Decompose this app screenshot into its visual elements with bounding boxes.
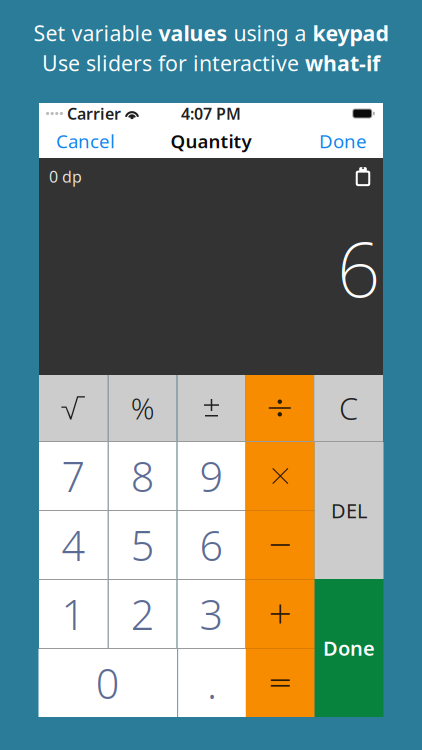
staticText: 6 [337,217,380,318]
staticText: 4 [61,518,85,572]
button[interactable]: Divide [245,375,314,441]
staticText: . [207,656,217,710]
staticText: 0 dp [49,166,82,187]
staticText: 2 [131,587,155,641]
button[interactable] [178,649,246,717]
button[interactable] [178,442,245,510]
staticText: 5 [131,518,155,572]
button[interactable] [178,580,245,648]
button[interactable] [109,442,177,510]
button[interactable] [109,511,177,579]
staticText: Done [319,129,367,153]
button[interactable] [39,580,108,648]
staticText: 9 [199,449,223,503]
button[interactable]: Done [309,124,383,158]
staticText: Quantity [170,129,251,153]
button[interactable]: Subtract [246,511,315,579]
staticText: 4:07 PM [181,103,241,124]
button[interactable]: Cancel [39,124,125,158]
button[interactable]: Copy [355,167,371,186]
button[interactable] [315,442,383,579]
staticText: % [131,388,155,427]
button[interactable] [109,580,177,648]
button[interactable]: Plus or minus [178,375,245,441]
button[interactable]: Multiply [246,442,315,510]
staticText: 0 [96,656,120,710]
staticText: Carrier [67,103,121,124]
staticText: C [339,388,358,428]
staticText: 8 [131,449,155,503]
button[interactable] [39,511,108,579]
staticText: Done [323,635,375,661]
button[interactable]: Add [246,580,315,648]
button[interactable] [39,442,108,510]
staticText: Set variable values using a keypad [33,19,388,47]
button[interactable] [38,649,177,717]
staticText: 1 [61,587,85,641]
button[interactable] [315,579,383,717]
button[interactable] [109,375,177,441]
staticText: DEL [331,497,367,524]
button[interactable] [314,375,383,441]
staticText: Cancel [56,129,115,153]
staticText: 7 [61,449,85,503]
staticText: 6 [199,518,223,572]
button[interactable]: Equals [246,649,315,717]
button[interactable]: Square root [39,375,108,441]
staticText: 3 [199,587,223,641]
button[interactable] [178,511,245,579]
staticText: Use sliders for interactive what-if [42,49,380,77]
